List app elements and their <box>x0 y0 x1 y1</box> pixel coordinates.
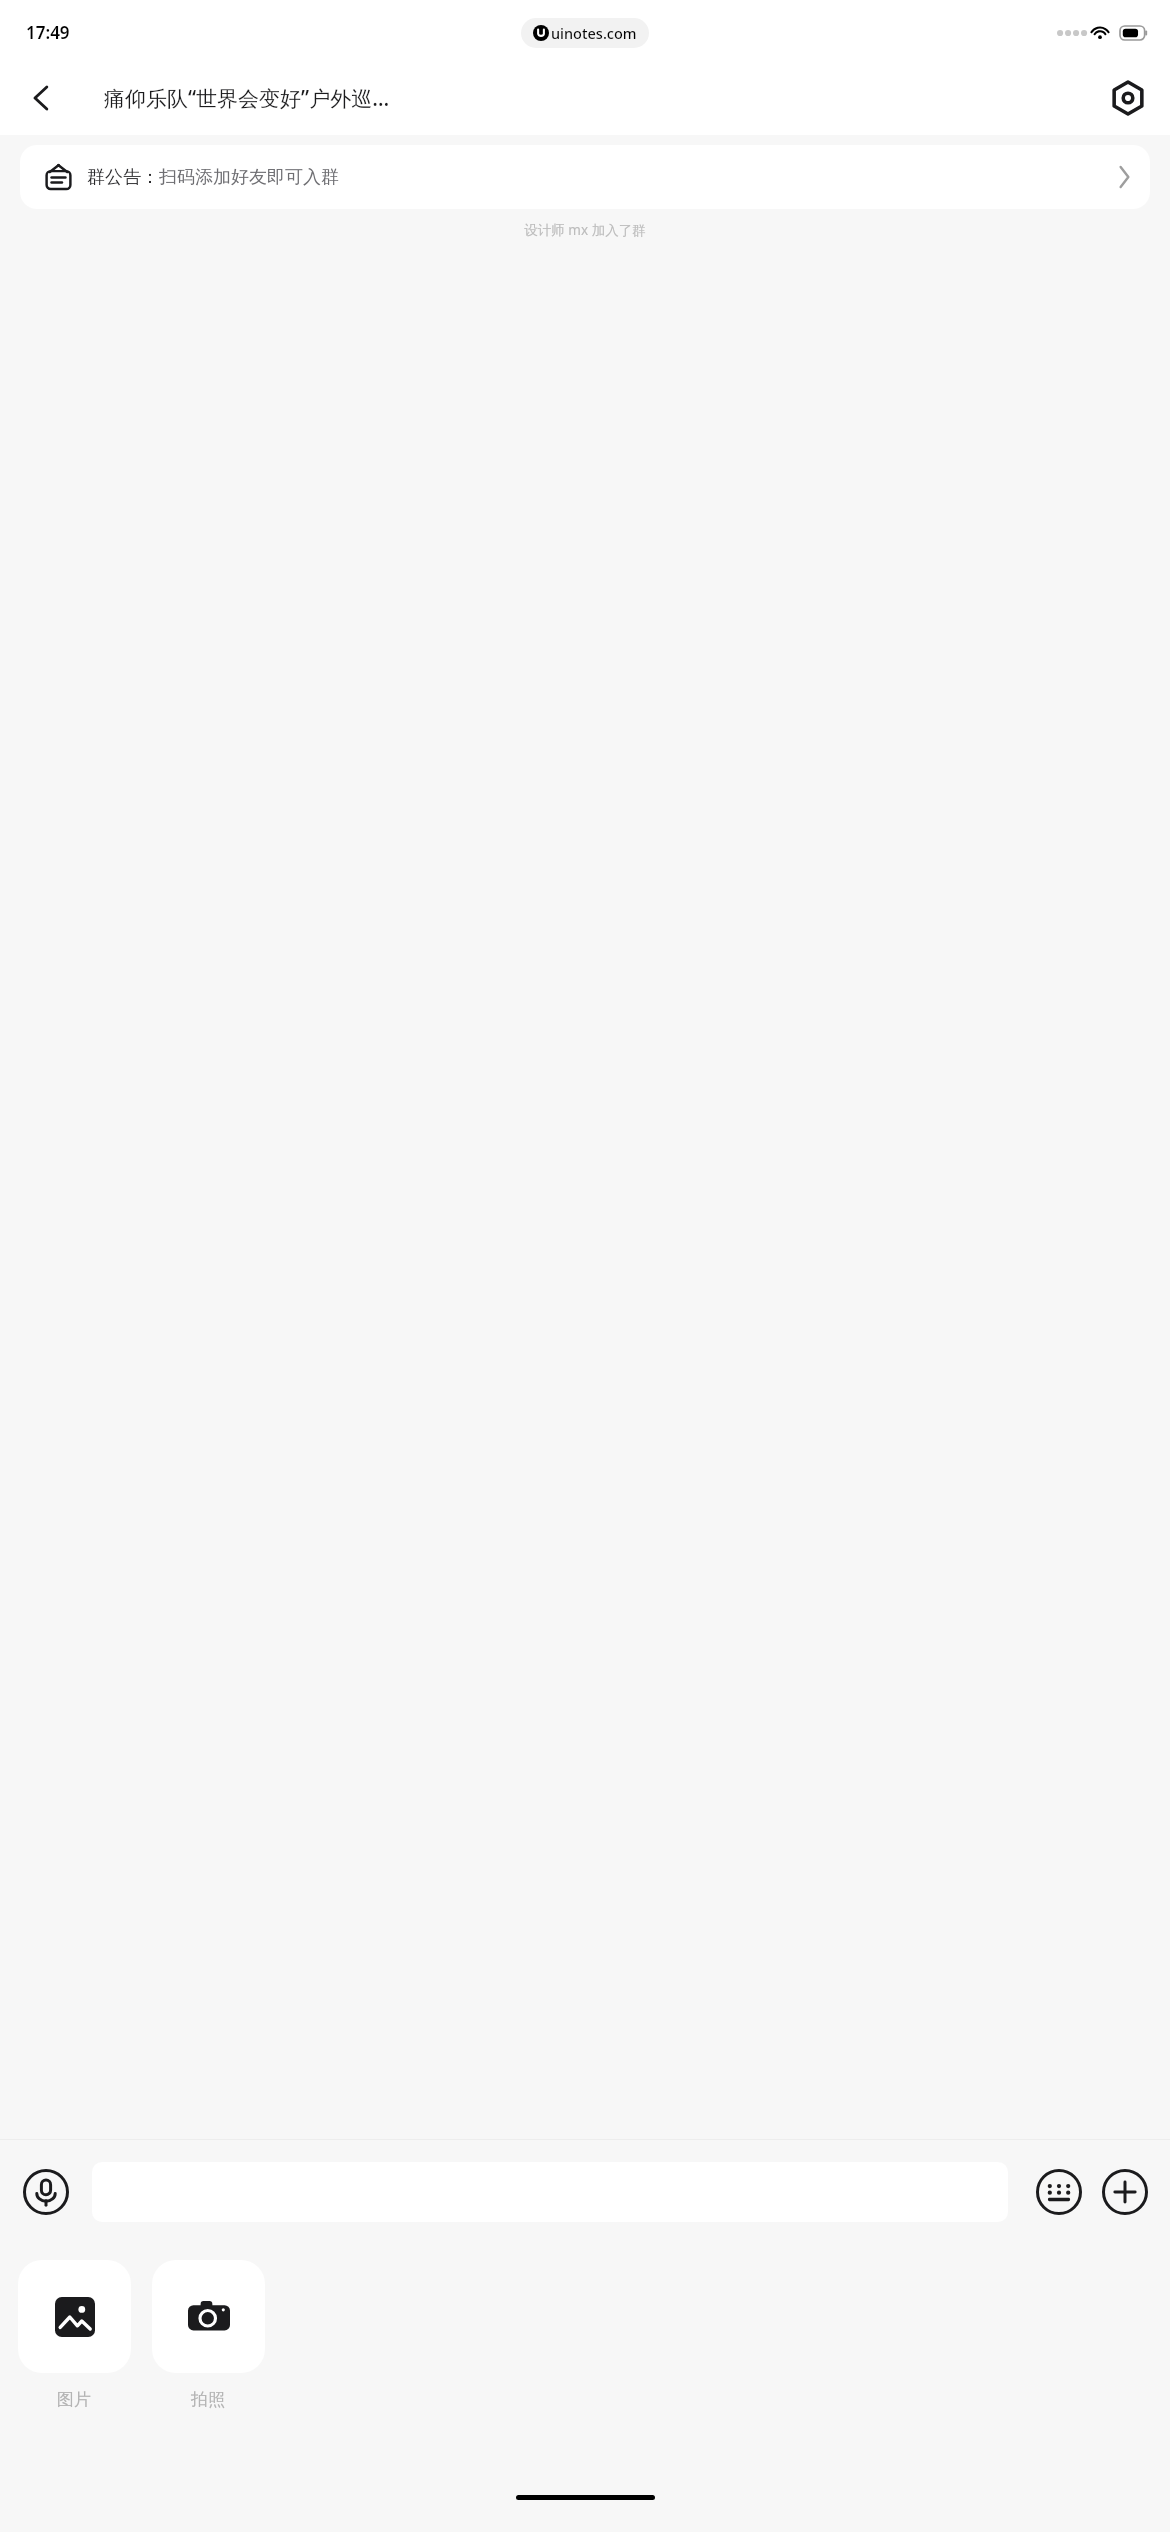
staticText: 17:49 <box>26 21 70 44</box>
staticText: 拍照 <box>191 2389 225 2410</box>
staticText: 群公告： <box>87 166 159 189</box>
staticText: 图片 <box>57 2389 91 2410</box>
button[interactable]: 图片 <box>16 2260 132 2410</box>
button[interactable]: 拍照 <box>150 2260 266 2410</box>
button[interactable]: Back <box>14 70 70 126</box>
staticText: 扫码添加好友即可入群 <box>159 166 1119 189</box>
staticText: 痛仰乐队“世界会变好”户外巡… <box>104 84 390 113</box>
staticText: 设计师 mx 加入了群 <box>0 221 1170 239</box>
button[interactable]: Voice message <box>16 2162 76 2222</box>
button[interactable]: Keyboard <box>1030 2163 1088 2221</box>
button[interactable]: 群公告： <box>20 145 1150 209</box>
button[interactable]: More options <box>1096 2163 1154 2221</box>
staticText: uinotes.com <box>551 23 637 43</box>
button[interactable]: Settings <box>1098 68 1158 128</box>
